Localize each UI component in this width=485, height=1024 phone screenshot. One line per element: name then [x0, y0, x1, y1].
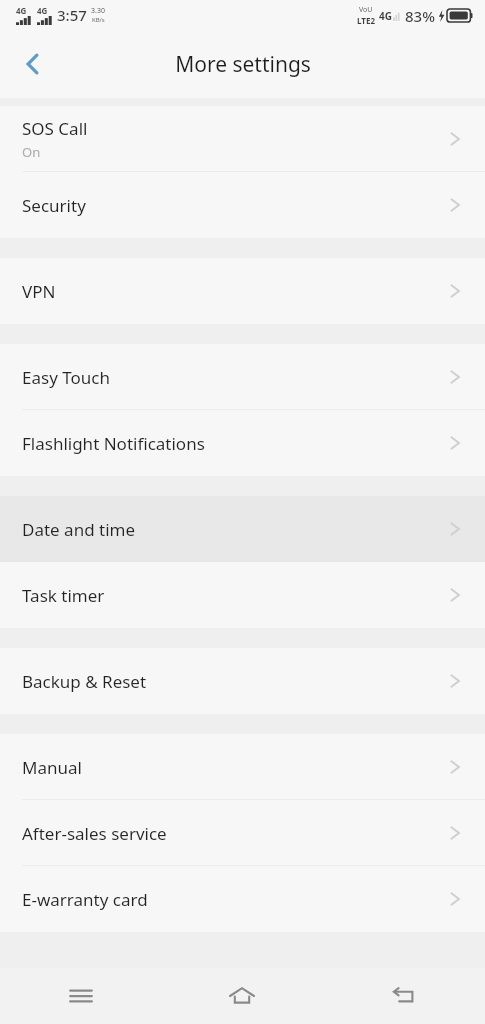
button[interactable]: Back: [14, 42, 58, 86]
staticText: Date and time: [22, 518, 136, 541]
staticText: E-warranty card: [22, 888, 148, 911]
button[interactable]: VPN: [0, 258, 485, 324]
staticText: Easy Touch: [22, 366, 110, 389]
staticText: Flashlight Notifications: [22, 432, 205, 455]
staticText: KB/s: [92, 16, 105, 24]
button[interactable]: Backup & Reset: [0, 648, 485, 714]
button[interactable]: Date and time: [0, 496, 485, 562]
button[interactable]: E-warranty card: [0, 866, 485, 932]
staticText: SOS Call: [22, 117, 88, 140]
staticText: More settings: [175, 50, 311, 79]
staticText: 3.30: [91, 6, 105, 16]
staticText: Manual: [22, 756, 82, 779]
staticText: After-sales service: [22, 822, 167, 845]
button[interactable]: Menu: [0, 968, 161, 1024]
staticText: 4G: [16, 5, 27, 16]
staticText: VoU: [359, 5, 373, 15]
button[interactable]: SOS Call: [0, 106, 485, 172]
staticText: Task timer: [22, 584, 105, 607]
staticText: On: [22, 143, 41, 161]
button[interactable]: Manual: [0, 734, 485, 800]
staticText: VPN: [22, 280, 56, 303]
staticText: 4G: [379, 9, 392, 23]
button[interactable]: After-sales service: [0, 800, 485, 866]
button[interactable]: Easy Touch: [0, 344, 485, 410]
staticText: Security: [22, 194, 86, 217]
button[interactable]: Back: [323, 968, 485, 1024]
staticText: 4G: [37, 5, 48, 16]
staticText: 3:57: [57, 5, 87, 25]
button[interactable]: Task timer: [0, 562, 485, 628]
button[interactable]: Security: [0, 172, 485, 238]
button[interactable]: Home: [161, 968, 323, 1024]
staticText: 83%: [405, 6, 435, 26]
button[interactable]: Flashlight Notifications: [0, 410, 485, 476]
staticText: Backup & Reset: [22, 670, 147, 693]
staticText: LTE2: [357, 15, 375, 26]
